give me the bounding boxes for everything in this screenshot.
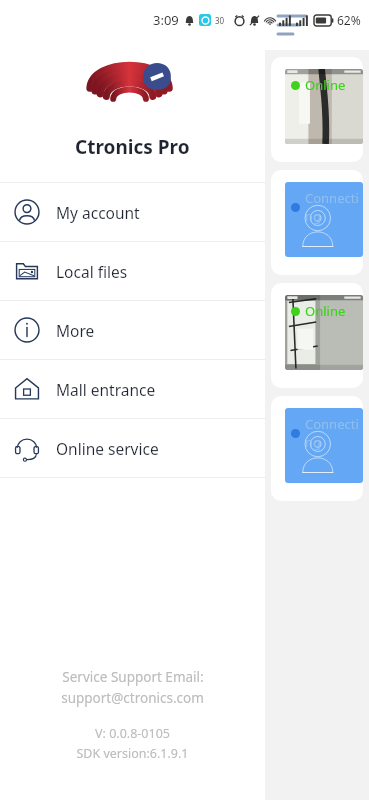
staticText: Online	[305, 302, 346, 320]
staticText: V: 0.0.8-0105	[95, 725, 170, 742]
staticText: More	[56, 320, 95, 341]
staticText: Online service	[56, 438, 159, 459]
staticText: SDK version:6.1.9.1	[76, 745, 189, 762]
button[interactable]: More	[0, 301, 265, 359]
button[interactable]: My account	[0, 183, 265, 241]
staticText: 62%	[337, 12, 361, 28]
staticText: Ctronics Pro	[75, 134, 190, 160]
staticText: support@ctronics.com	[61, 689, 204, 707]
staticText: Connecting	[305, 189, 363, 225]
button[interactable]: Online	[271, 283, 363, 388]
staticText: 3:09	[153, 11, 179, 29]
button[interactable]: Open navigation menu	[275, 8, 309, 42]
button[interactable]: Online service	[0, 419, 265, 477]
staticText: Local files	[56, 261, 128, 282]
button[interactable]: Connecting	[271, 170, 363, 275]
button[interactable]: Mall entrance	[0, 360, 265, 418]
button[interactable]: Local files	[0, 242, 265, 300]
staticText: Connecting	[305, 415, 363, 451]
button[interactable]: Online	[271, 57, 363, 162]
staticText: Service Support Email:	[62, 668, 204, 686]
staticText: Online	[305, 76, 346, 94]
staticText: My account	[56, 202, 140, 223]
staticText: Mall entrance	[56, 379, 156, 400]
staticText: 30	[215, 15, 225, 26]
button[interactable]: Connecting	[271, 396, 363, 501]
